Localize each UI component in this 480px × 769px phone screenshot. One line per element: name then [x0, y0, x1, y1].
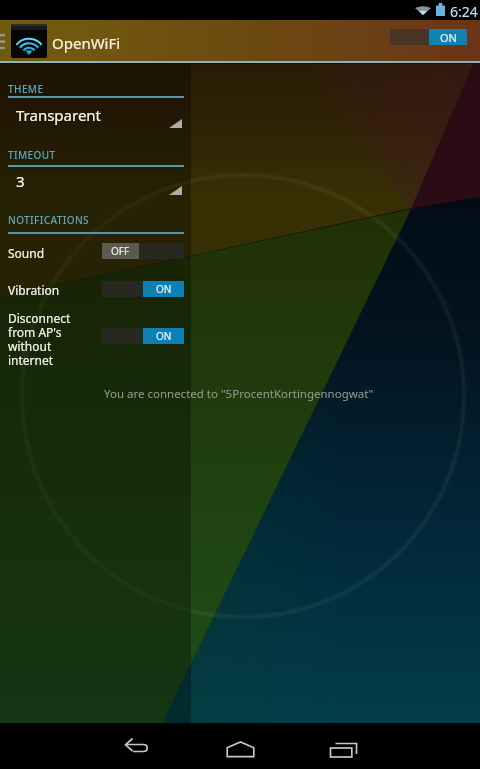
- staticText: You are connected to "5ProcentKortingenn…: [104, 386, 374, 402]
- staticText: Vibration: [8, 282, 60, 298]
- button[interactable]: Open dropdown: [8, 93, 184, 127]
- staticText: ON: [440, 30, 457, 45]
- staticText: TIMEOUT: [8, 148, 56, 162]
- button[interactable]: Home: [211, 723, 269, 769]
- staticText: 6:24: [450, 2, 478, 21]
- button[interactable]: Switch on: [102, 328, 184, 344]
- button[interactable]: Switch off: [102, 243, 184, 259]
- button[interactable]: Back: [107, 723, 165, 769]
- staticText: ON: [156, 282, 172, 296]
- staticText: Transparent: [16, 105, 102, 125]
- staticText: THEME: [8, 82, 44, 96]
- staticText: OFF: [111, 244, 130, 258]
- button[interactable]: Navigation menu: [0, 20, 11, 62]
- staticText: ON: [156, 329, 172, 343]
- staticText: 3: [16, 171, 25, 191]
- button[interactable]: Open dropdown: [8, 160, 184, 194]
- staticText: OpenWiFi: [52, 33, 121, 53]
- button[interactable]: Recent apps: [314, 723, 372, 769]
- staticText: Sound: [8, 245, 45, 261]
- button[interactable]: Switch on: [102, 281, 184, 297]
- button[interactable]: Enable OpenWiFi: [390, 29, 467, 45]
- staticText: Disconnect from AP's without internet: [8, 310, 71, 368]
- staticText: NOTIFICATIONS: [8, 213, 89, 227]
